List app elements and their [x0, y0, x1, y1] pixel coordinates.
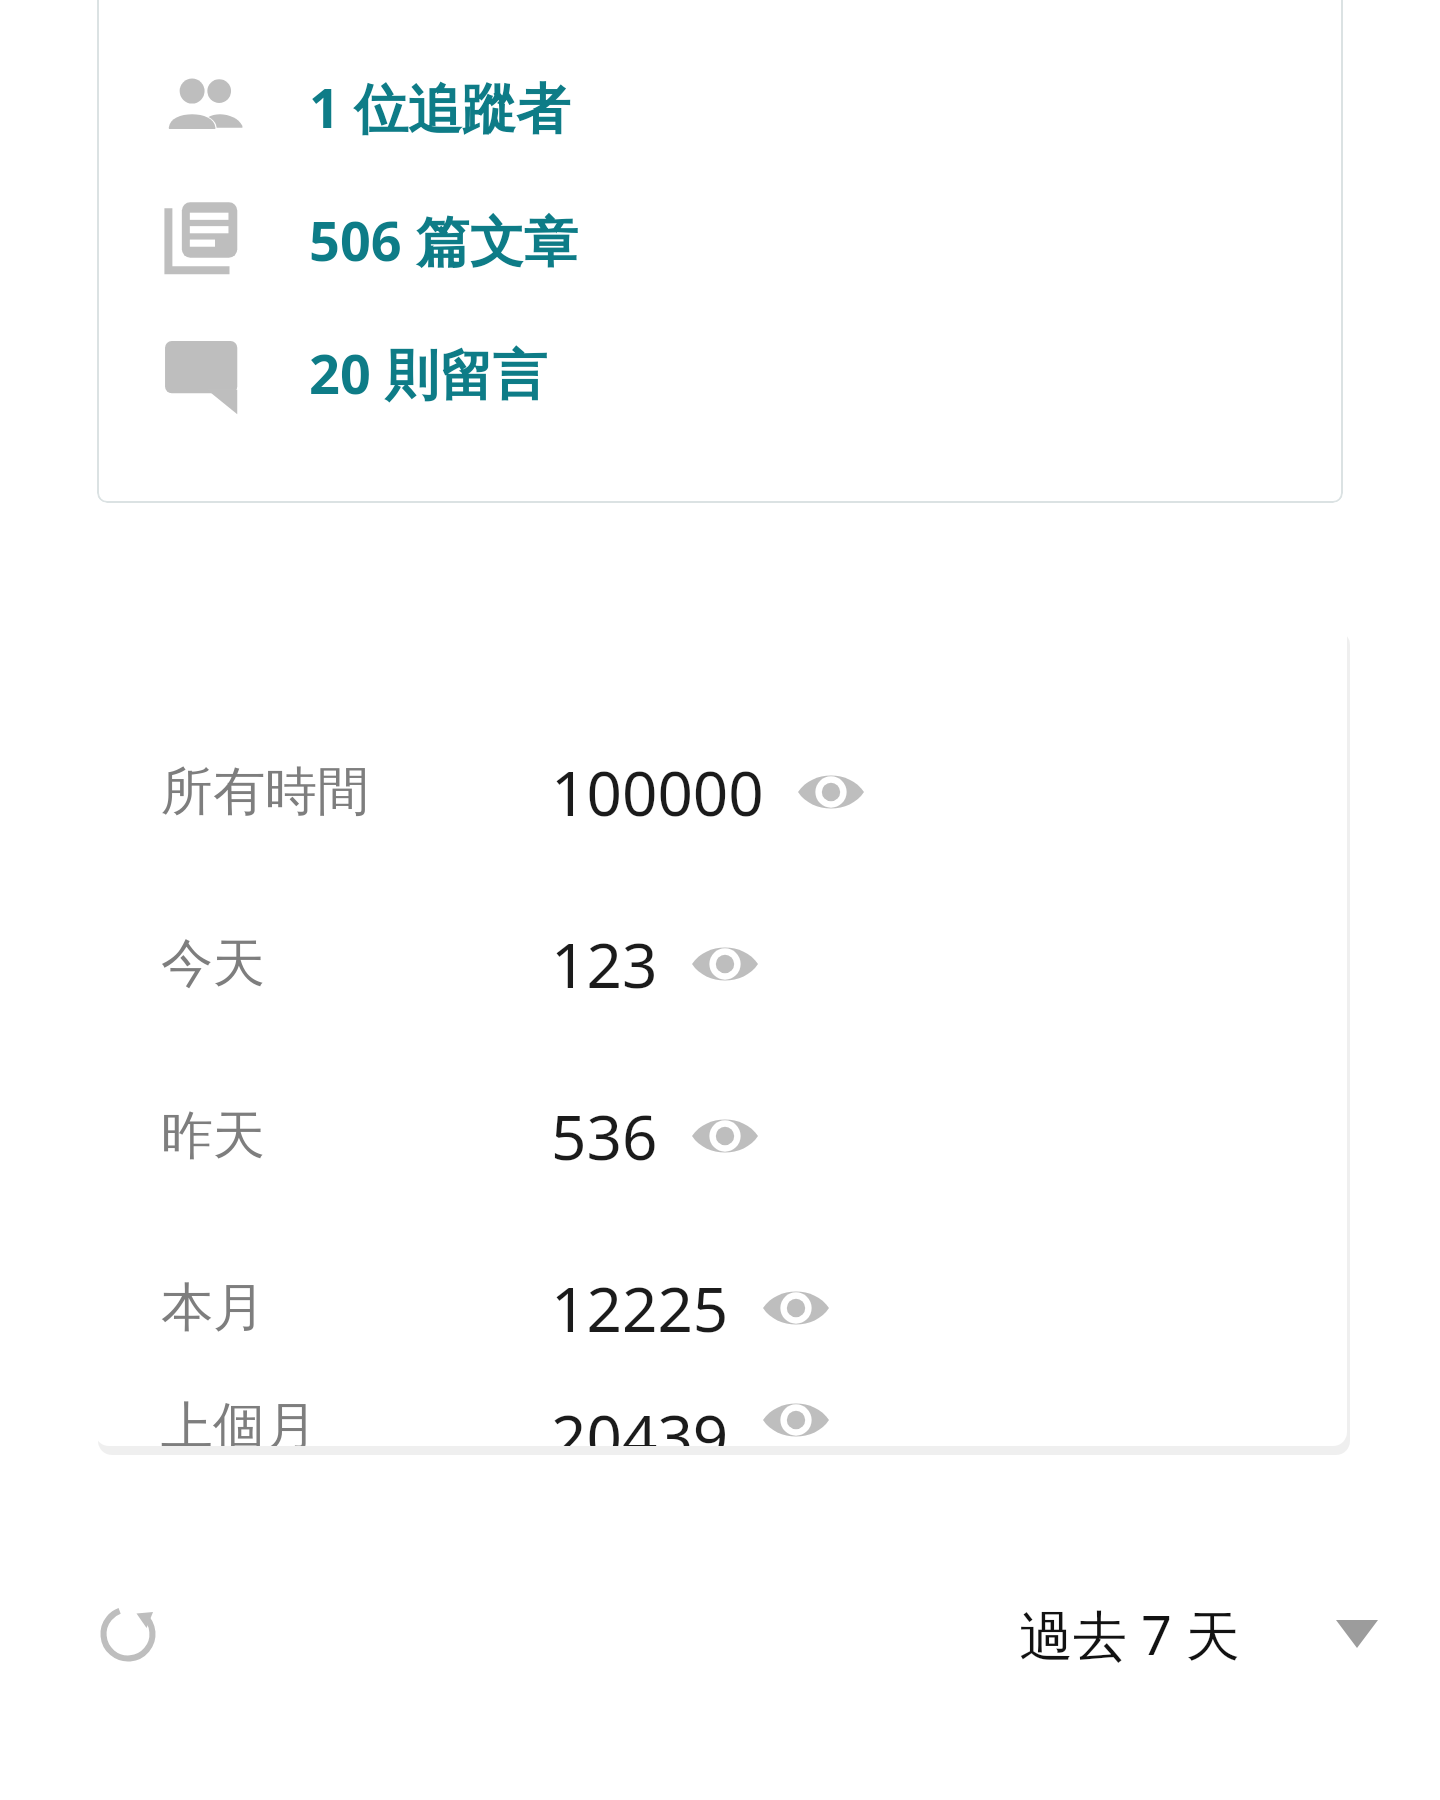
button[interactable]: 20 則留言: [97, 306, 1343, 439]
button[interactable]: Views: [684, 923, 766, 1005]
button[interactable]: 本月: [95, 1222, 1347, 1394]
button[interactable]: 上個月: [95, 1394, 1347, 1446]
staticText: 12225: [551, 1266, 729, 1350]
button[interactable]: Views: [684, 1095, 766, 1177]
staticText: 1 位追蹤者: [309, 70, 570, 144]
staticText: 20 則留言: [309, 336, 547, 410]
button[interactable]: 昨天: [95, 1050, 1347, 1222]
button[interactable]: Views: [755, 1267, 837, 1349]
staticText: 過去 7 天: [1019, 1597, 1240, 1671]
button[interactable]: Views: [790, 751, 872, 833]
staticText: 今天: [161, 931, 265, 997]
button[interactable]: 過去 7 天: [1003, 1579, 1394, 1689]
button[interactable]: 今天: [95, 878, 1347, 1050]
staticText: 506 篇文章: [309, 203, 578, 277]
staticText: 所有時間: [161, 759, 369, 825]
staticText: 20439: [551, 1394, 729, 1446]
button[interactable]: 506 篇文章: [97, 173, 1343, 306]
staticText: 昨天: [161, 1103, 265, 1169]
button[interactable]: Refresh: [76, 1582, 180, 1686]
staticText: 100000: [551, 750, 764, 834]
staticText: 本月: [161, 1275, 265, 1341]
button[interactable]: Views: [755, 1394, 837, 1446]
staticText: 上個月: [161, 1394, 317, 1446]
button[interactable]: 1 位追蹤者: [97, 40, 1343, 173]
button[interactable]: 所有時間: [95, 706, 1347, 878]
staticText: 536: [551, 1094, 658, 1178]
staticText: 123: [551, 922, 658, 1006]
